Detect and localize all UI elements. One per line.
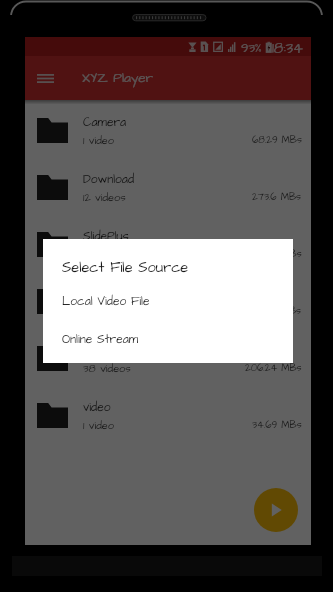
staticText: 93% (241, 39, 262, 57)
staticText: 1 video (83, 133, 114, 148)
staticText: Camera (83, 114, 127, 131)
button[interactable]: Telegram (25, 330, 311, 387)
staticText: Telegram (83, 342, 134, 359)
button[interactable]: Download (25, 159, 311, 216)
staticText: Select File Source (62, 258, 189, 278)
staticText: 34.69 MBs (252, 418, 302, 432)
staticText: 38 videos (83, 361, 131, 376)
button[interactable]: SlidePlus (25, 216, 311, 273)
button[interactable]: video (25, 387, 311, 444)
staticText: 75.12 MBs (255, 304, 302, 318)
staticText: video (83, 399, 111, 416)
staticText: Movies (83, 285, 121, 302)
staticText: 68.29 MBs (252, 133, 302, 147)
staticText: 273.6 MBs (252, 190, 302, 204)
staticText: Local Video File (62, 293, 150, 310)
button[interactable]: Play (254, 488, 298, 532)
staticText: XYZ Player (82, 69, 154, 88)
staticText: 18:34 (272, 39, 303, 58)
staticText: 143.68 MBs (250, 247, 302, 261)
staticText: 12 videos (83, 190, 126, 205)
button[interactable]: Camera (25, 102, 311, 159)
staticText: 206.24 MBs (245, 361, 302, 375)
button[interactable]: Movies (25, 273, 311, 330)
staticText: 1 video (83, 418, 114, 433)
button[interactable]: Online Stream (43, 321, 293, 357)
button[interactable]: Local Video File (43, 283, 293, 319)
staticText: SlidePlus (83, 228, 129, 245)
button[interactable]: Open navigation menu (29, 62, 61, 94)
staticText: 3 videos (83, 304, 124, 319)
staticText: Online Stream (62, 331, 139, 348)
staticText: Download (83, 171, 135, 188)
